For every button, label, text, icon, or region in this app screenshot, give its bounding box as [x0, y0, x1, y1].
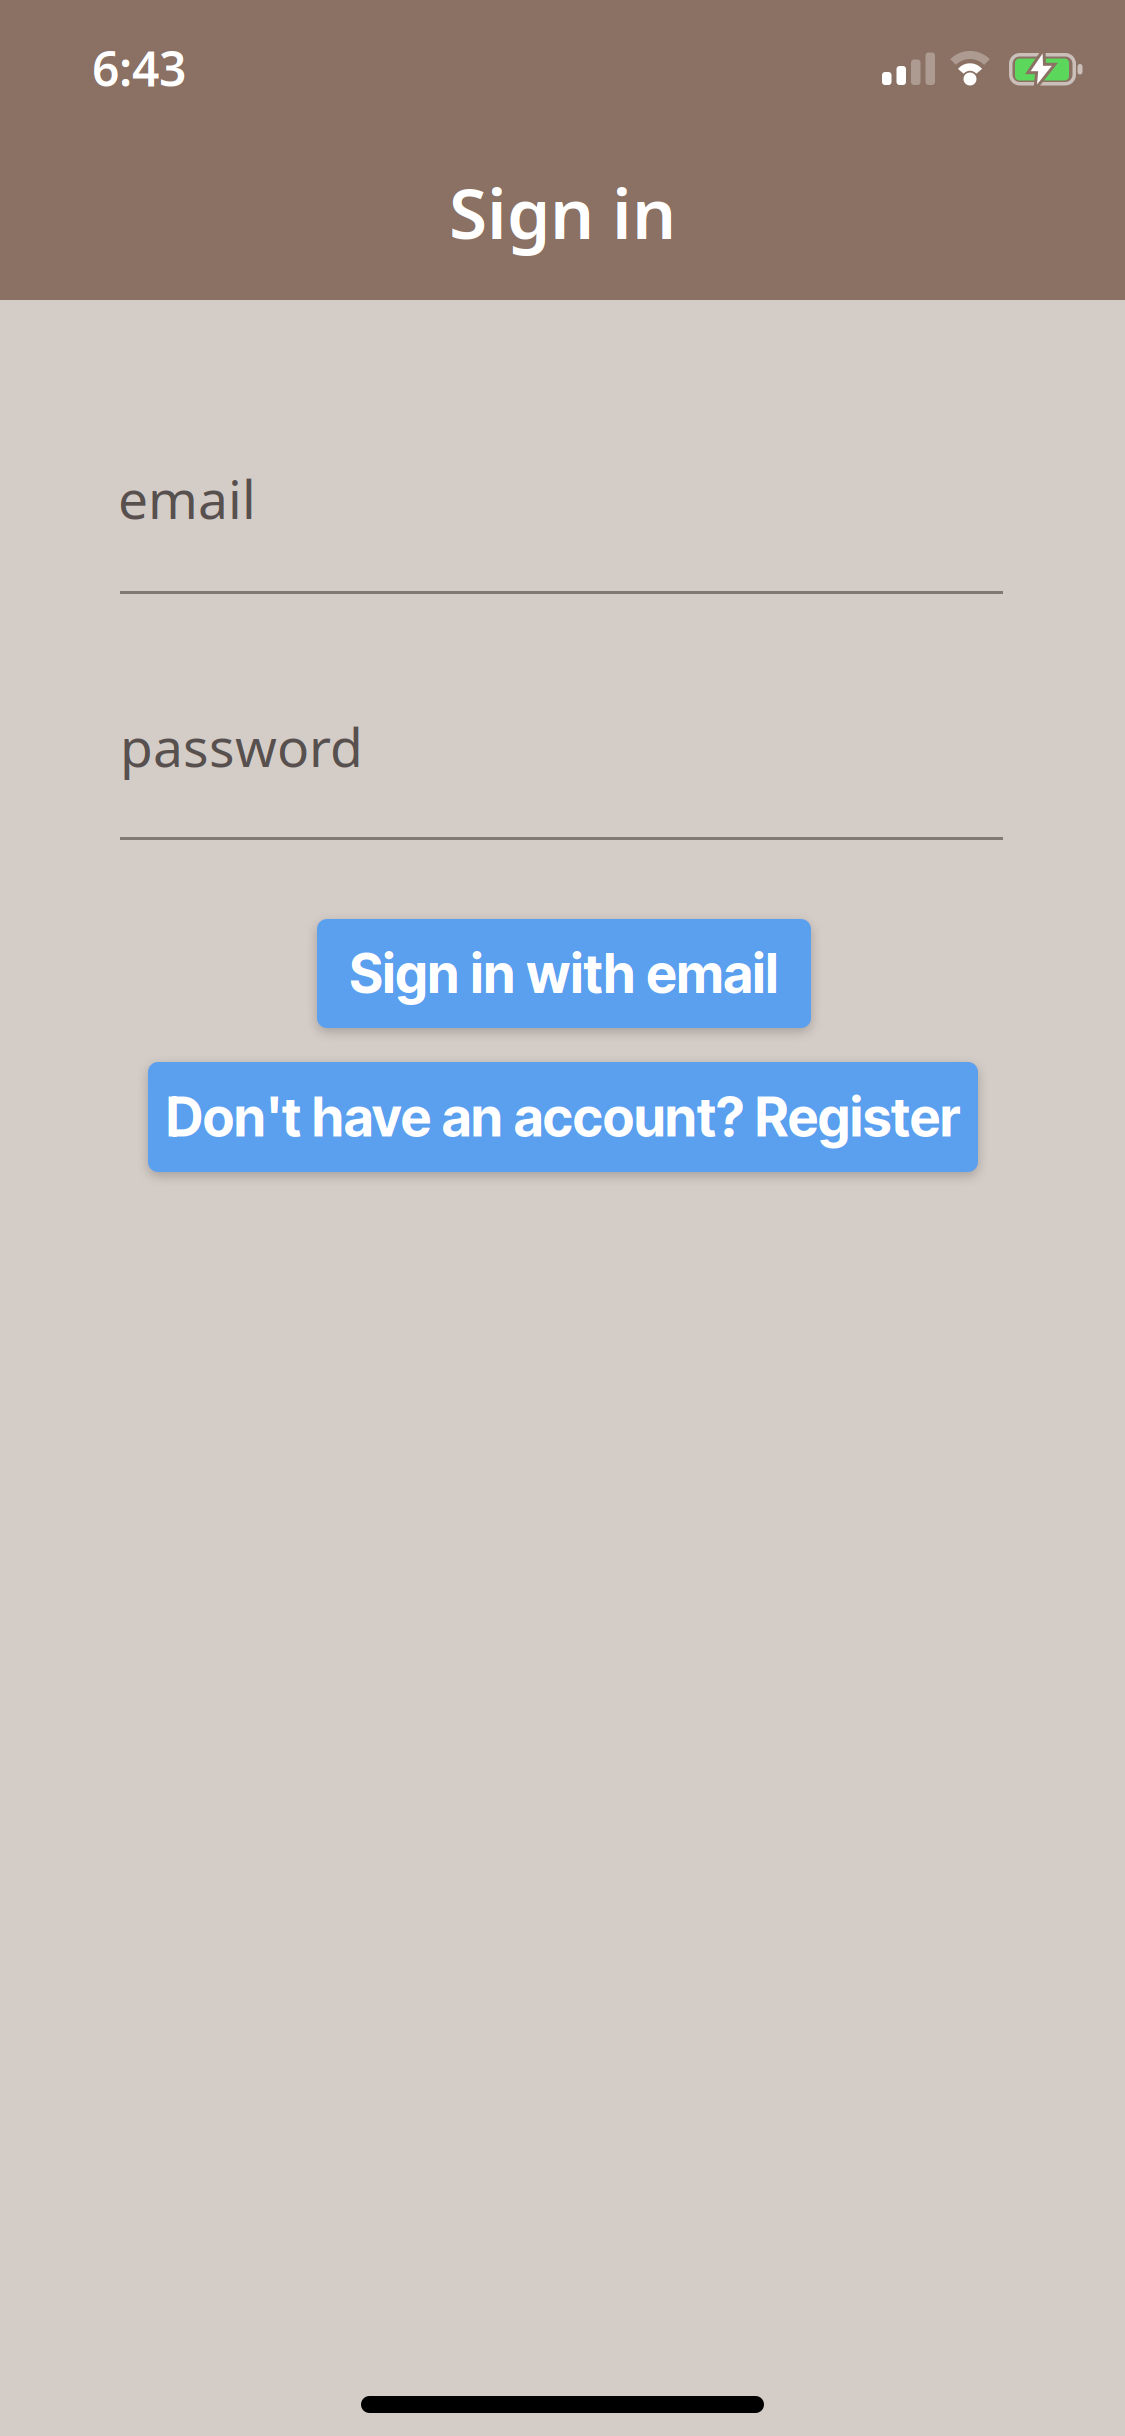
staticText: Sign in — [449, 166, 676, 258]
staticText: email — [118, 463, 256, 534]
button[interactable]: Don't have an account? Register — [148, 1062, 978, 1172]
staticText: 6:43 — [92, 36, 186, 100]
staticText: password — [120, 711, 363, 782]
staticText: Sign in with email — [349, 941, 778, 1006]
button[interactable]: Sign in with email — [317, 919, 811, 1028]
staticText: Don't have an account? Register — [166, 1085, 960, 1149]
